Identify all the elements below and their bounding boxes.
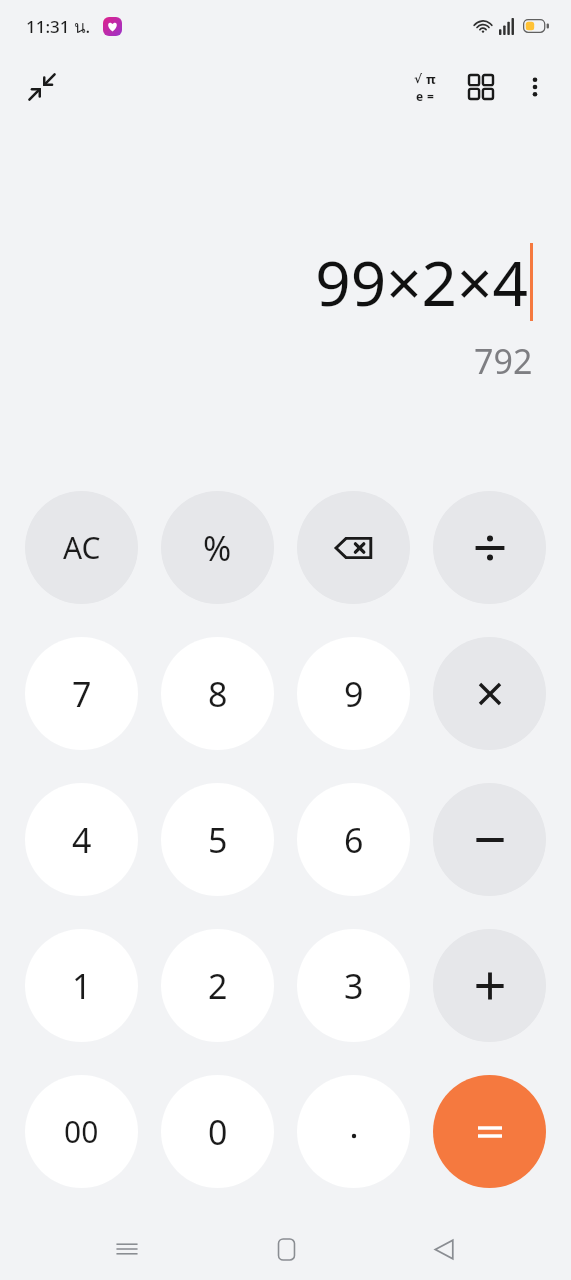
staticText: = [427, 88, 434, 104]
staticText: 0 [208, 1109, 228, 1155]
button[interactable]: More options [509, 61, 561, 113]
staticText: e [416, 88, 424, 104]
button[interactable]: 2 [161, 929, 274, 1042]
staticText: 2 [208, 963, 228, 1009]
staticText: 792 [474, 338, 533, 384]
staticText: 1 [72, 963, 92, 1009]
button[interactable]: Minus [433, 783, 546, 896]
button[interactable]: 8 [161, 637, 274, 750]
button[interactable]: Equals [433, 1075, 546, 1188]
button[interactable]: % [161, 491, 274, 604]
button[interactable]: 9 [297, 637, 410, 750]
staticText: 5 [208, 817, 228, 863]
button[interactable]: 5 [161, 783, 274, 896]
button[interactable]: 1 [25, 929, 138, 1042]
button[interactable]: 0 [161, 1075, 274, 1188]
staticText: 3 [344, 963, 364, 1009]
staticText: 00 [64, 1111, 99, 1152]
button[interactable]: 3 [297, 929, 410, 1042]
staticText: 7 [72, 671, 92, 717]
button[interactable]: Back [413, 1218, 475, 1280]
button[interactable]: AC [25, 491, 138, 604]
button[interactable]: Scientific mode [397, 59, 453, 115]
staticText: 8 [208, 671, 228, 717]
button[interactable]: Divide [433, 491, 546, 604]
button[interactable]: Recents [96, 1218, 158, 1280]
staticText: 9 [344, 671, 364, 717]
button[interactable]: Plus [433, 929, 546, 1042]
staticText: √ [414, 72, 423, 86]
staticText: π [426, 70, 436, 88]
button[interactable]: Unit converter [453, 59, 509, 115]
button[interactable]: Backspace [297, 491, 410, 604]
button[interactable]: 4 [25, 783, 138, 896]
staticText: % [203, 525, 232, 571]
button[interactable]: Decimal point [297, 1075, 410, 1188]
button[interactable]: Multiply [433, 637, 546, 750]
staticText: 11:31 น. [26, 13, 91, 40]
staticText: 99×2×4 [315, 240, 528, 324]
button[interactable]: 6 [297, 783, 410, 896]
button[interactable]: 00 [25, 1075, 138, 1188]
button[interactable]: Home [255, 1218, 317, 1280]
staticText: 4 [72, 817, 92, 863]
button[interactable]: 7 [25, 637, 138, 750]
staticText: AC [63, 527, 101, 568]
staticText: 6 [344, 817, 364, 863]
button[interactable]: Collapse [14, 59, 70, 115]
